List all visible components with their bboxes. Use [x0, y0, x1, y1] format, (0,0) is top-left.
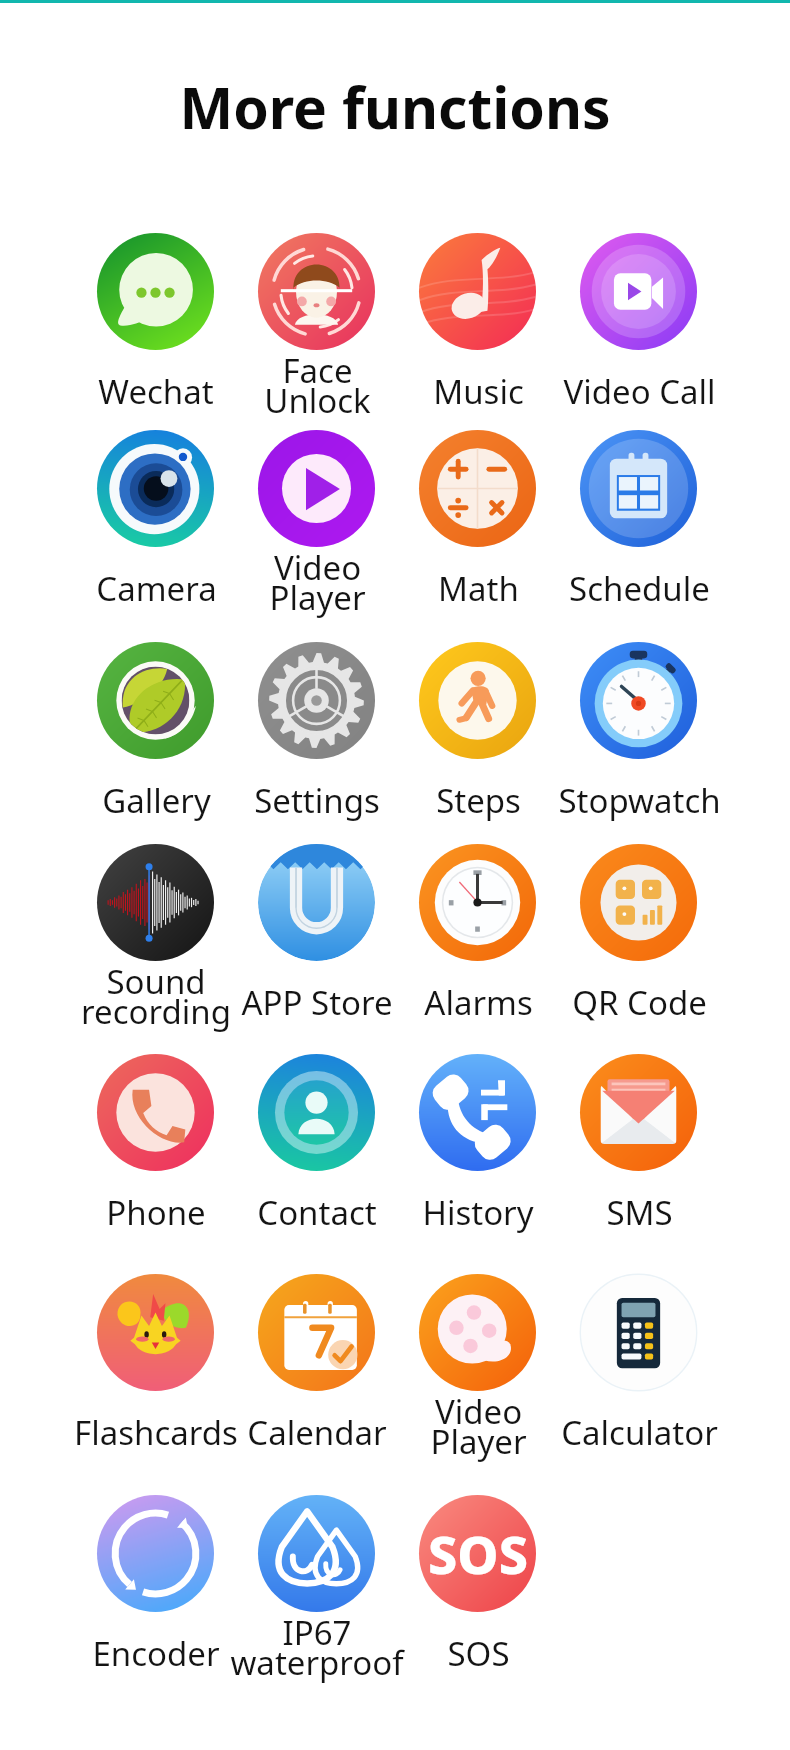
button[interactable]: Contact	[207, 1054, 427, 1219]
button[interactable]: Video Player	[207, 430, 427, 615]
staticText: Steps	[436, 778, 521, 823]
staticText: QR Code	[572, 980, 707, 1025]
staticText: SOS	[447, 1631, 510, 1676]
button[interactable]: APP Store	[207, 844, 427, 1009]
button[interactable]: IP67 waterproof	[207, 1495, 427, 1680]
staticText: SMS	[606, 1190, 673, 1235]
staticText: Alarms	[424, 980, 533, 1025]
button[interactable]: QR Code	[529, 844, 749, 1009]
staticText: Calculator	[561, 1410, 718, 1455]
staticText: Camera	[96, 566, 217, 611]
button[interactable]: Video Player	[368, 1274, 588, 1459]
button[interactable]: Flashcards	[46, 1274, 266, 1439]
staticText: Phone	[106, 1190, 206, 1235]
staticText: More functions	[0, 68, 790, 146]
staticText: Music	[433, 369, 524, 414]
staticText: Sound recording	[81, 959, 231, 1033]
button[interactable]: Encoder	[46, 1495, 266, 1660]
staticText: History	[422, 1190, 534, 1235]
button[interactable]: Phone	[46, 1054, 266, 1219]
staticText: Math	[438, 566, 519, 611]
button[interactable]: SMS	[529, 1054, 749, 1219]
button[interactable]: Alarms	[368, 844, 588, 1009]
staticText: Schedule	[569, 566, 710, 611]
button[interactable]: Schedule	[529, 430, 749, 595]
button[interactable]: Stopwatch	[529, 642, 749, 807]
staticText: Flashcards	[74, 1410, 238, 1455]
staticText: Face Unlock	[264, 348, 371, 422]
button[interactable]: Face Unlock	[207, 233, 427, 418]
staticText: APP Store	[241, 980, 393, 1025]
staticText: Contact	[257, 1190, 377, 1235]
button[interactable]: History	[368, 1054, 588, 1219]
button[interactable]: Settings	[207, 642, 427, 807]
staticText: Settings	[254, 778, 380, 823]
staticText: Wechat	[98, 369, 214, 414]
button[interactable]: Calculator	[529, 1274, 749, 1439]
button[interactable]: Camera	[46, 430, 266, 595]
button[interactable]: Video Call	[529, 233, 749, 398]
button[interactable]: SOS	[368, 1495, 588, 1660]
button[interactable]: Math	[368, 430, 588, 595]
button[interactable]: Music	[368, 233, 588, 398]
button[interactable]: Gallery	[46, 642, 266, 807]
button[interactable]: Wechat	[46, 233, 266, 398]
staticText: Gallery	[102, 778, 211, 823]
button[interactable]: Sound recording	[46, 844, 266, 1029]
staticText: Video Call	[563, 369, 716, 414]
staticText: IP67 waterproof	[230, 1610, 404, 1684]
staticText: Encoder	[92, 1631, 220, 1676]
staticText: Stopwatch	[558, 778, 721, 823]
staticText: Video Player	[269, 545, 366, 619]
button[interactable]: Calendar	[207, 1274, 427, 1439]
staticText: Video Player	[430, 1389, 527, 1463]
button[interactable]: Steps	[368, 642, 588, 807]
staticText: SOS	[428, 1518, 528, 1589]
staticText: Calendar	[247, 1410, 387, 1455]
